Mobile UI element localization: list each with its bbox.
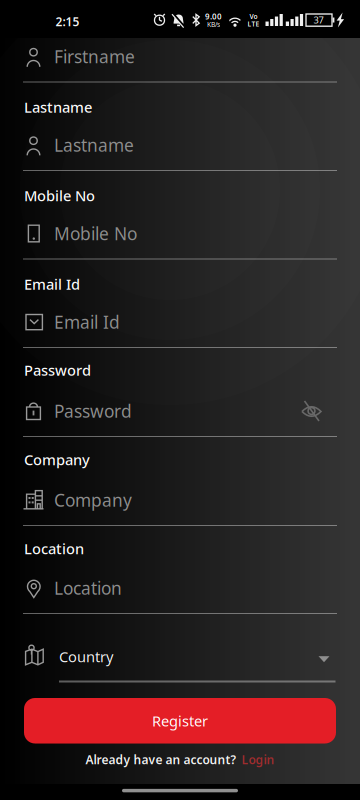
button[interactable]: Company: [23, 476, 337, 524]
staticText: Country: [59, 647, 113, 666]
staticText: LTE: [247, 20, 259, 28]
staticText: Register: [152, 711, 208, 730]
staticText: Email Id: [54, 310, 120, 333]
staticText: Password: [54, 399, 132, 422]
staticText: Firstname: [54, 45, 135, 68]
staticText: Email Id: [24, 274, 80, 294]
staticText: KB/s: [207, 20, 220, 29]
staticText: Lastname: [24, 97, 92, 117]
staticText: Lastname: [54, 133, 134, 156]
button[interactable]: Mobile No: [23, 209, 337, 257]
staticText: Location: [24, 539, 84, 558]
button[interactable]: Firstname: [23, 32, 337, 80]
staticText: Mobile No: [24, 186, 95, 205]
button[interactable]: Show password: [300, 398, 323, 423]
button[interactable]: Email Id: [23, 298, 337, 346]
button[interactable]: Password: [23, 387, 337, 435]
staticText: Company: [54, 488, 132, 511]
button[interactable]: Lastname: [23, 121, 337, 169]
staticText: 37: [313, 14, 323, 26]
staticText: Company: [24, 450, 90, 469]
staticText: 2:15: [55, 13, 79, 29]
staticText: Login: [241, 751, 274, 767]
button[interactable]: Register: [24, 698, 336, 743]
staticText: Password: [24, 360, 91, 380]
staticText: Location: [54, 576, 122, 599]
staticText: Vo: [249, 12, 257, 21]
button[interactable]: Login: [241, 751, 274, 767]
staticText: Mobile No: [54, 222, 137, 245]
button[interactable]: Country: [23, 634, 337, 678]
button[interactable]: Location: [23, 564, 337, 612]
staticText: Already have an account?: [85, 751, 236, 767]
staticText: 9.00: [205, 11, 222, 22]
